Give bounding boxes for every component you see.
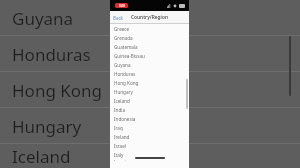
button[interactable]: Iceland bbox=[0, 144, 300, 168]
staticText: Hungary bbox=[114, 89, 133, 95]
staticText: Greece bbox=[114, 26, 130, 32]
button[interactable]: Back bbox=[110, 13, 127, 23]
button[interactable]: Grenada bbox=[110, 33, 189, 42]
staticText: Hong Kong bbox=[12, 79, 103, 102]
staticText: 0:00 bbox=[119, 4, 125, 8]
button[interactable]: Israel bbox=[110, 141, 189, 150]
staticText: Hungary bbox=[12, 115, 82, 138]
staticText: Guinea-Bissau bbox=[114, 53, 145, 59]
staticText: Guyana bbox=[114, 62, 131, 68]
staticText: Iceland bbox=[114, 98, 130, 104]
button[interactable]: Guyana bbox=[0, 0, 300, 36]
button[interactable]: Iraq bbox=[110, 123, 189, 132]
staticText: Ireland bbox=[114, 134, 130, 140]
button[interactable]: Hungary bbox=[0, 108, 300, 144]
button[interactable]: Guyana bbox=[110, 60, 189, 69]
button[interactable]: Greece bbox=[110, 24, 189, 33]
staticText: Israel bbox=[114, 143, 126, 149]
staticText: Guatemala bbox=[114, 44, 138, 50]
button[interactable]: Honduras bbox=[110, 69, 189, 78]
staticText: Honduras bbox=[12, 43, 91, 66]
button[interactable]: Jamaica bbox=[110, 159, 189, 161]
button[interactable]: Hungary bbox=[110, 87, 189, 96]
staticText: Grenada bbox=[114, 35, 133, 41]
button[interactable]: Honduras bbox=[0, 36, 300, 72]
staticText: Indonesia bbox=[114, 116, 136, 122]
staticText: Country/Region bbox=[131, 14, 168, 21]
staticText: Honduras bbox=[114, 71, 136, 77]
button[interactable]: Guinea-Bissau bbox=[110, 51, 189, 60]
button[interactable]: India bbox=[110, 105, 189, 114]
staticText: Italy bbox=[114, 152, 124, 158]
staticText: Jamaica bbox=[114, 159, 131, 161]
staticText: Iraq bbox=[114, 125, 123, 131]
staticText: Iceland bbox=[12, 145, 71, 168]
staticText: Hong Kong bbox=[114, 80, 139, 86]
button[interactable]: Ireland bbox=[110, 132, 189, 141]
button[interactable]: Hong Kong bbox=[0, 72, 300, 108]
staticText: Back bbox=[113, 15, 124, 21]
button[interactable]: Hong Kong bbox=[110, 78, 189, 87]
button[interactable]: Iceland bbox=[110, 96, 189, 105]
staticText: India bbox=[114, 107, 125, 113]
button[interactable]: Italy bbox=[110, 150, 189, 159]
staticText: Guyana bbox=[12, 7, 74, 30]
button[interactable]: Indonesia bbox=[110, 114, 189, 123]
button[interactable]: Guatemala bbox=[110, 42, 189, 51]
